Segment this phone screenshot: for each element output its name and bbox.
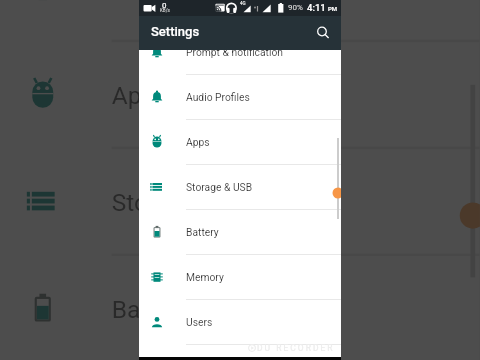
staticText: Apps — [112, 80, 169, 109]
button[interactable]: Apps — [139, 120, 341, 165]
staticText: 4:11 — [307, 2, 326, 13]
staticText: Users — [186, 316, 213, 328]
staticText: KB/s — [160, 8, 170, 13]
button[interactable]: Audio Profiles — [139, 75, 341, 120]
button[interactable]: Users — [139, 300, 341, 345]
button[interactable]: Prompt & notification — [139, 30, 341, 75]
staticText: PM — [328, 5, 338, 12]
staticText: Battery — [112, 294, 190, 322]
button[interactable]: Apps — [0, 42, 480, 149]
staticText: DU RECORDER — [257, 343, 335, 353]
staticText: Storage & USB — [186, 181, 253, 193]
staticText: 90% — [288, 3, 303, 12]
button[interactable]: Battery — [139, 210, 341, 255]
staticText: Audio Profiles — [112, 0, 264, 2]
button[interactable]: Storage & USB — [139, 165, 341, 210]
button[interactable]: Search — [312, 22, 334, 44]
staticText: Storage & USB — [112, 187, 271, 216]
button[interactable]: Memory — [139, 255, 341, 300]
staticText: Apps — [186, 136, 210, 148]
staticText: Audio Profiles — [186, 91, 250, 103]
staticText: Prompt & notification — [186, 46, 284, 58]
staticText: Battery — [186, 226, 219, 238]
button[interactable]: Storage & USB — [0, 149, 480, 256]
button[interactable]: Battery — [0, 256, 480, 360]
staticText: 0 — [162, 1, 167, 10]
button[interactable]: Audio Profiles — [0, 0, 480, 42]
staticText: Memory — [186, 271, 224, 283]
staticText: Settings — [151, 24, 200, 39]
staticText: 4G — [240, 1, 246, 6]
